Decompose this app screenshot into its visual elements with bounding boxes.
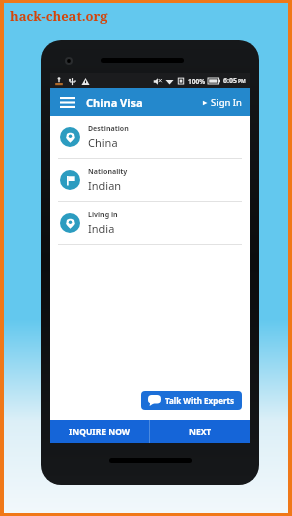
staticText: Nationality — [88, 167, 128, 177]
staticText: Indian — [88, 178, 122, 193]
staticText: INQUIRE NOW — [69, 426, 130, 438]
button[interactable]: Living in — [50, 202, 250, 244]
staticText: PM — [238, 78, 246, 85]
staticText: Talk With Experts — [165, 395, 235, 406]
button[interactable]: Nationality — [50, 159, 250, 201]
button[interactable]: Sign In — [200, 93, 244, 112]
staticText: China Visa — [86, 95, 143, 110]
button[interactable]: INQUIRE NOW — [50, 420, 149, 443]
staticText: Living in — [88, 210, 118, 220]
button[interactable]: Talk With Experts — [141, 391, 242, 410]
staticText: Sign In — [211, 96, 242, 109]
staticText: Destination — [88, 124, 129, 134]
staticText: China — [88, 135, 118, 150]
button[interactable]: Open navigation menu — [56, 91, 78, 113]
staticText: NEXT — [189, 426, 212, 438]
staticText: hack-cheat.org — [10, 7, 108, 25]
staticText: India — [88, 221, 115, 236]
button[interactable]: Destination — [50, 116, 250, 158]
staticText: 6:05 — [223, 76, 237, 86]
button[interactable]: NEXT — [150, 420, 250, 443]
staticText: 100% — [188, 77, 206, 86]
